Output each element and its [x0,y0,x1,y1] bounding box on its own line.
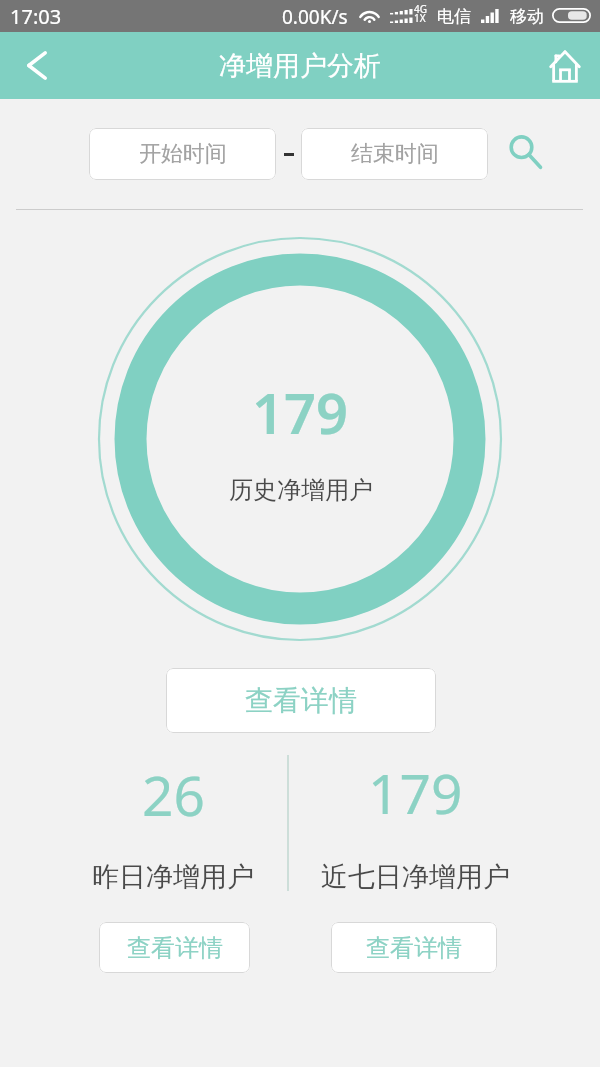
staticText: 昨日净增用户 [92,860,254,894]
staticText: 查看详情 [127,933,223,963]
staticText: 26 [142,757,205,832]
button[interactable]: 查看详情 [166,668,436,733]
staticText: 历史净增用户 [229,475,373,505]
staticText: 179 [252,374,349,450]
staticText: 查看详情 [366,933,462,963]
staticText: 17:03 [10,3,62,30]
button[interactable]: 查看详情 [99,922,250,973]
staticText: 结束时间 [351,140,439,168]
staticText: 1X [414,11,426,25]
staticText: 净增用户分析 [219,49,381,83]
staticText: 查看详情 [245,683,357,718]
staticText: 0.00K/s [282,4,348,30]
button[interactable]: 开始时间 [89,128,276,180]
button[interactable]: Search [498,123,546,171]
button[interactable]: Home [531,33,598,100]
button[interactable]: 查看详情 [331,922,497,973]
staticText: 电信 [437,6,471,27]
staticText: 4G [414,2,427,16]
staticText: 移动 [510,6,544,27]
button[interactable]: Back [3,32,70,99]
staticText: 179 [368,755,463,830]
staticText: 开始时间 [139,140,227,168]
staticText: 近七日净增用户 [321,860,510,894]
button[interactable]: 结束时间 [301,128,488,180]
